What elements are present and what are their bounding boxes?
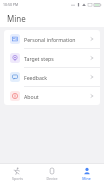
staticText: Sports: [12, 176, 23, 181]
button[interactable]: Mine: [69, 165, 104, 183]
staticText: Mine: [82, 176, 91, 181]
staticText: Mine: [7, 13, 26, 24]
button[interactable]: Device: [34, 165, 69, 183]
button[interactable]: Target steps: [4, 49, 100, 68]
button[interactable]: Feedback: [4, 68, 100, 87]
button[interactable]: Sports: [0, 165, 34, 183]
button[interactable]: Personal information: [4, 30, 100, 49]
staticText: 10:50 PM: [3, 2, 19, 7]
staticText: About: [24, 93, 39, 100]
staticText: Feedback: [24, 74, 48, 81]
staticText: Personal information: [24, 36, 76, 43]
staticText: Target steps: [24, 55, 54, 62]
button[interactable]: About: [4, 87, 100, 105]
staticText: Device: [46, 176, 58, 181]
